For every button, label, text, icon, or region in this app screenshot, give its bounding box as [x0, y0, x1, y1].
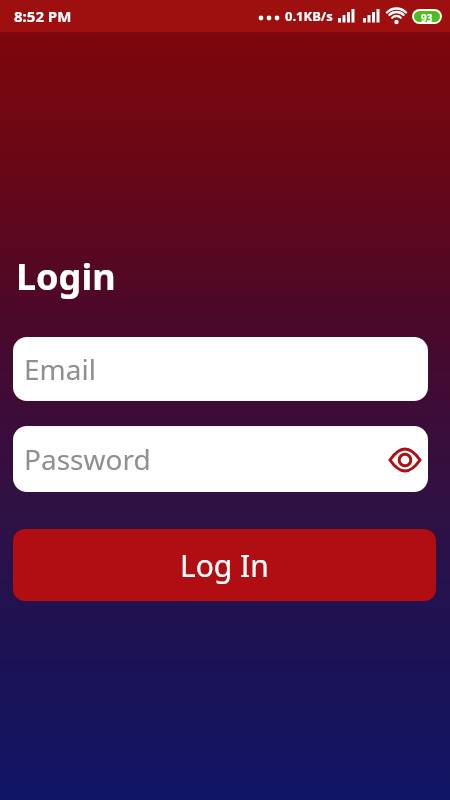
- button[interactable]: Password: [13, 426, 428, 492]
- button[interactable]: Email: [13, 337, 428, 401]
- staticText: Log In: [180, 545, 269, 586]
- staticText: 8:52 PM: [14, 6, 72, 26]
- staticText: Login: [16, 252, 116, 301]
- staticText: 0.1KB/s: [285, 7, 333, 25]
- staticText: 93: [421, 11, 433, 22]
- staticText: Password: [24, 440, 151, 478]
- staticText: Email: [24, 350, 96, 388]
- button[interactable]: Log In: [13, 529, 436, 601]
